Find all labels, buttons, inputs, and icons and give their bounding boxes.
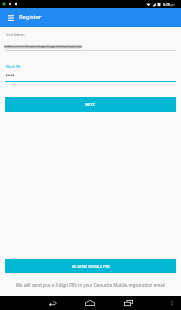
button[interactable]: RE-SEND MOBILE PIN: [5, 259, 176, 273]
staticText: NEXT: [85, 102, 96, 107]
staticText: 6:05: [163, 2, 171, 7]
button[interactable]: More options: [168, 299, 176, 307]
staticText: Email Address: [6, 33, 25, 37]
button[interactable]: Home: [82, 296, 98, 310]
staticText: Register: [19, 13, 42, 21]
staticText: RE-SEND MOBILE PIN: [72, 264, 110, 269]
button[interactable]: Back: [44, 296, 60, 310]
button[interactable]: NEXT: [5, 97, 176, 112]
button[interactable]: Open navigation drawer: [4, 11, 18, 25]
staticText: pm: [171, 3, 176, 7]
button[interactable]: Recent apps: [120, 296, 136, 310]
staticText: Mobile PIN: [6, 65, 21, 69]
staticText: We will send you a 4 digit PIN to your G…: [0, 282, 181, 288]
